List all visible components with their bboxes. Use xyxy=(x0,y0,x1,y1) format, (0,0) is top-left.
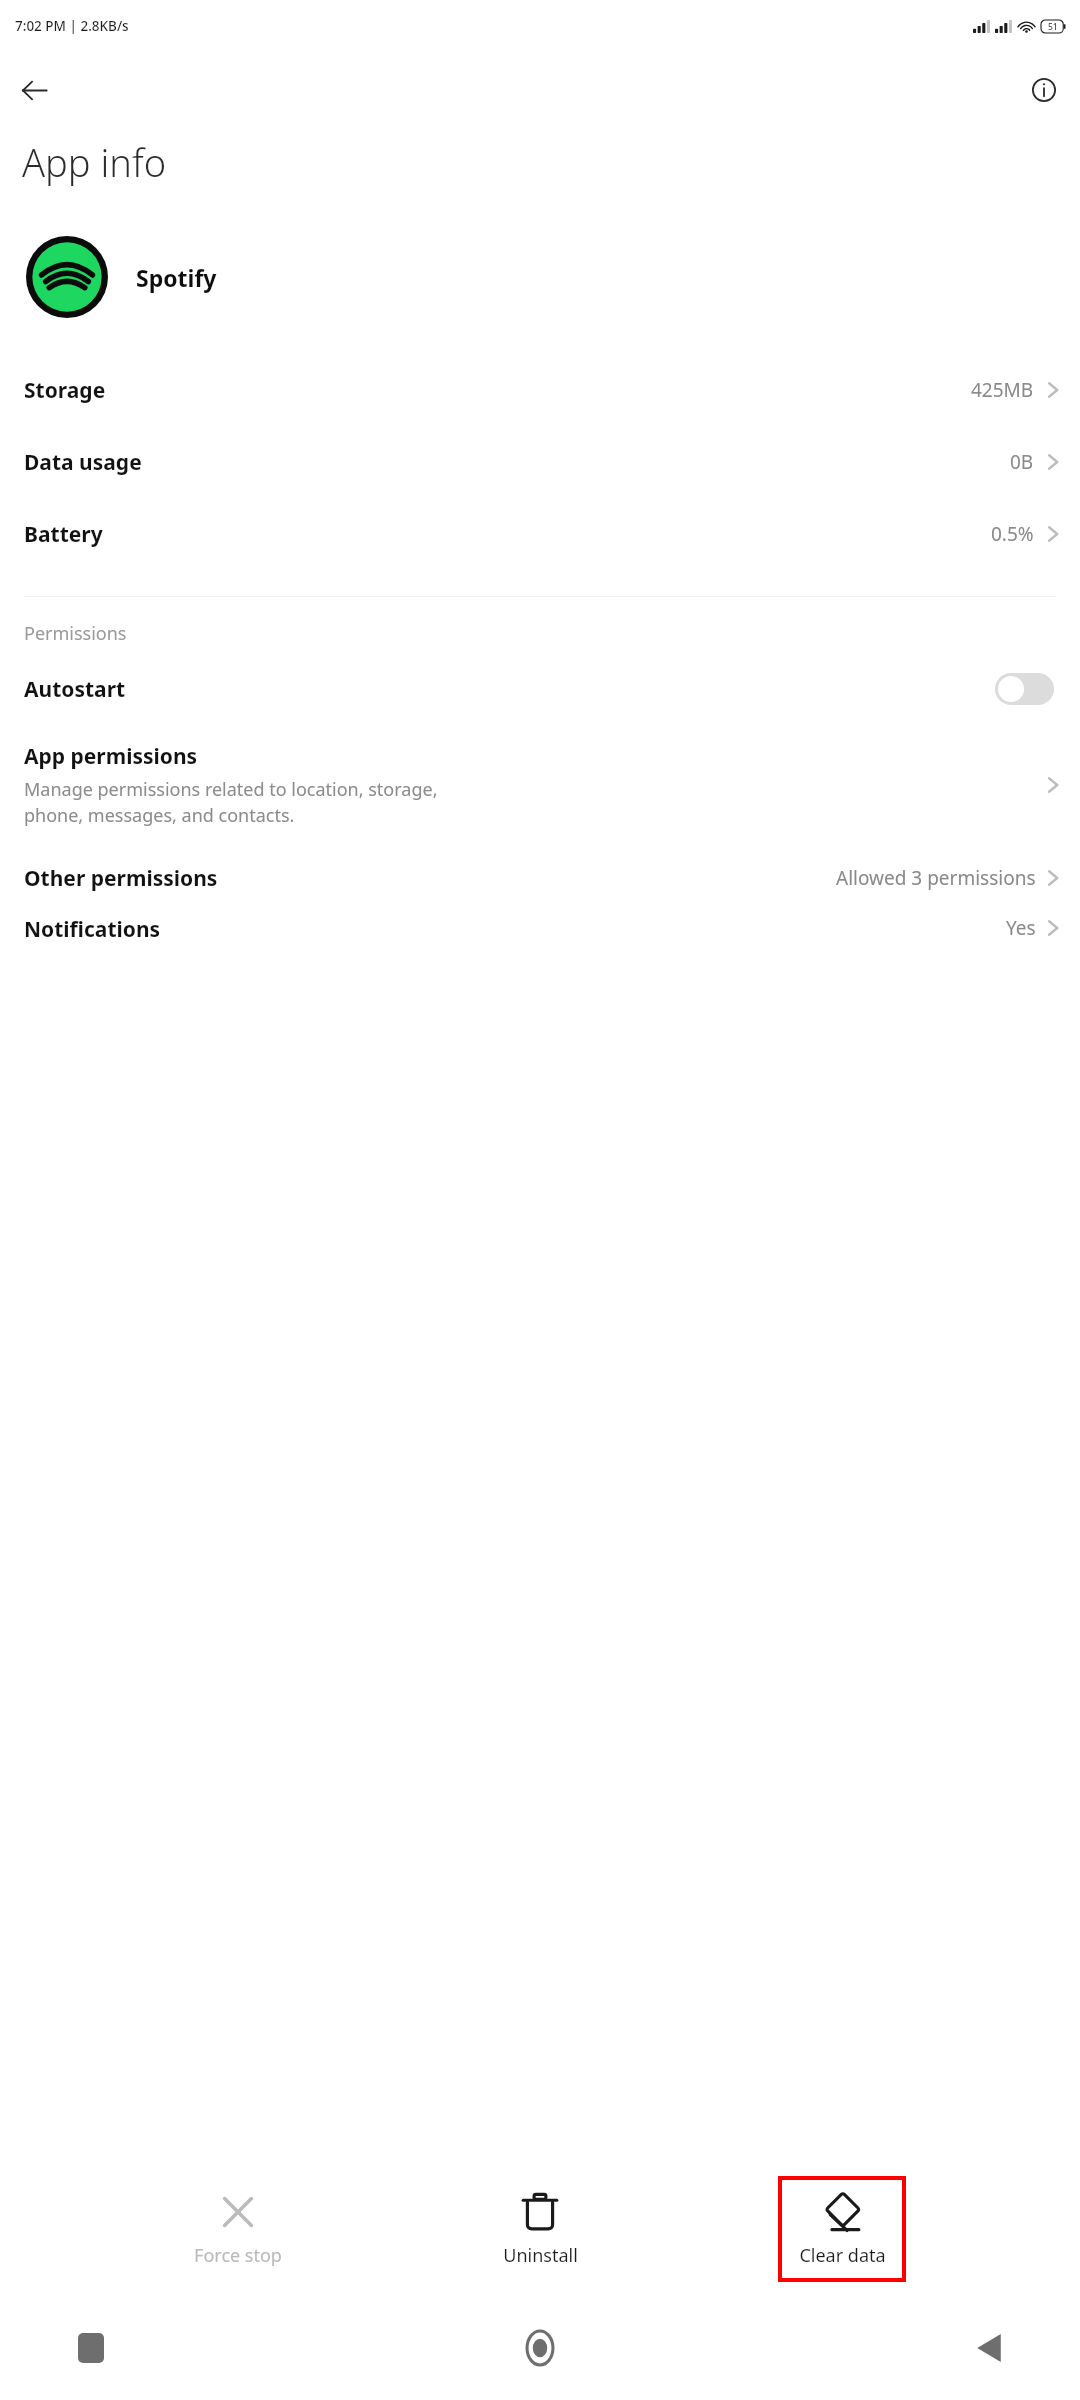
button[interactable]: Notifications xyxy=(0,915,1080,941)
button[interactable]: Home xyxy=(503,2311,577,2385)
staticText: Spotify xyxy=(136,262,217,293)
staticText: Manage permissions related to location, … xyxy=(24,777,438,827)
staticText: Storage xyxy=(24,376,106,405)
button[interactable]: Back xyxy=(952,2311,1026,2385)
button[interactable]: Other permissions xyxy=(0,841,1080,915)
staticText: 425MB xyxy=(971,377,1034,403)
button[interactable]: Recent apps xyxy=(54,2311,128,2385)
staticText: App permissions xyxy=(24,742,198,771)
staticText: 0B xyxy=(1010,449,1034,475)
button[interactable]: Battery xyxy=(0,498,1080,570)
button[interactable]: Data usage xyxy=(0,426,1080,498)
button[interactable]: Autostart xyxy=(0,650,1080,728)
button[interactable]: Force stop xyxy=(174,2176,302,2282)
staticText: 0.5% xyxy=(991,521,1034,547)
staticText: Allowed 3 permissions xyxy=(836,865,1036,891)
staticText: Yes xyxy=(1006,915,1036,941)
staticText: Notifications xyxy=(24,915,161,941)
staticText: Force stop xyxy=(194,2243,282,2268)
staticText: Data usage xyxy=(24,448,142,477)
staticText: 51 xyxy=(1048,21,1058,33)
staticText: Battery xyxy=(24,520,103,549)
button[interactable]: Back xyxy=(6,62,62,118)
staticText: Autostart xyxy=(24,675,126,704)
button[interactable]: Clear data xyxy=(778,2176,906,2282)
button[interactable]: Uninstall xyxy=(476,2176,604,2282)
staticText: Other permissions xyxy=(24,864,218,893)
button[interactable]: App permissions xyxy=(0,728,1080,841)
staticText: Permissions xyxy=(24,621,127,646)
button[interactable]: Storage xyxy=(0,354,1080,426)
staticText: Uninstall xyxy=(503,2243,578,2268)
staticText: Clear data xyxy=(799,2243,886,2268)
button[interactable]: App details info xyxy=(1016,62,1072,118)
staticText: App info xyxy=(22,136,167,188)
staticText: 7:02 PM | 2.8KB/s xyxy=(15,17,129,35)
